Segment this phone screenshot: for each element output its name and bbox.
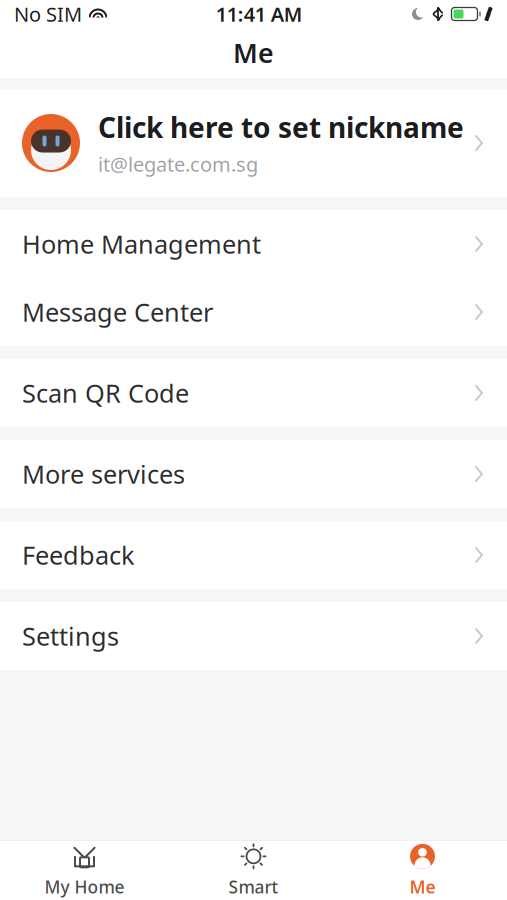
staticText: 11:41 AM	[216, 1, 303, 27]
staticText: Click here to set nickname	[98, 109, 464, 146]
staticText: it@legate.com.sg	[98, 151, 258, 177]
button[interactable]: Message Center	[0, 278, 507, 346]
button[interactable]: My Home	[0, 841, 169, 900]
button[interactable]: Settings	[0, 602, 507, 670]
staticText: Me	[409, 875, 435, 898]
staticText: More services	[22, 457, 185, 491]
button[interactable]: Feedback	[0, 521, 507, 589]
staticText: Settings	[22, 619, 119, 653]
staticText: Me	[233, 35, 274, 70]
staticText: Feedback	[22, 538, 135, 572]
button[interactable]: Smart	[169, 841, 338, 900]
staticText: Scan QR Code	[22, 376, 189, 410]
button[interactable]: Home Management	[0, 210, 507, 278]
button[interactable]: Click here to set nickname	[0, 89, 507, 197]
staticText: Home Management	[22, 227, 261, 261]
staticText: Message Center	[22, 295, 213, 329]
button[interactable]: Me	[338, 841, 507, 900]
button[interactable]: More services	[0, 440, 507, 508]
staticText: My Home	[44, 875, 124, 898]
button[interactable]: Scan QR Code	[0, 359, 507, 427]
staticText: No SIM	[14, 1, 82, 27]
staticText: Smart	[228, 875, 278, 898]
